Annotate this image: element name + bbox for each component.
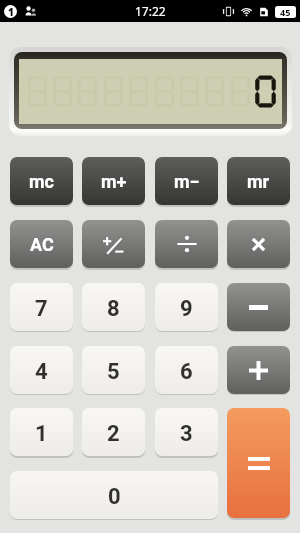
staticText: 17:22 <box>135 3 166 19</box>
button[interactable]: 0 <box>10 471 218 519</box>
button[interactable]: Divide <box>155 220 218 268</box>
button[interactable]: Plus <box>227 346 290 394</box>
staticText: AC <box>30 234 54 255</box>
staticText: 1 <box>35 421 48 447</box>
button[interactable]: 9 <box>155 283 218 331</box>
button[interactable]: 4 <box>10 346 73 394</box>
button[interactable]: 6 <box>155 346 218 394</box>
button[interactable]: 1 <box>10 408 73 456</box>
staticText: mc <box>29 171 54 192</box>
staticText: 6 <box>180 359 193 385</box>
staticText: 0 <box>108 484 121 510</box>
button[interactable]: 2 <box>82 408 145 456</box>
staticText: 3 <box>180 421 193 447</box>
staticText: 45 <box>280 6 291 18</box>
staticText: 1 <box>8 5 14 18</box>
button[interactable]: 3 <box>155 408 218 456</box>
button[interactable]: Equals <box>227 408 290 518</box>
staticText: 2 <box>107 421 120 447</box>
button[interactable]: Memory subtract <box>155 157 218 205</box>
button[interactable]: Memory add <box>82 157 145 205</box>
button[interactable]: Memory recall <box>227 157 290 205</box>
staticText: m+ <box>101 171 127 192</box>
button[interactable]: Multiply <box>227 220 290 268</box>
button[interactable]: 7 <box>10 283 73 331</box>
button[interactable]: 5 <box>82 346 145 394</box>
staticText: 7 <box>35 296 48 322</box>
button[interactable]: Memory clear <box>10 157 73 205</box>
staticText: 5 <box>107 359 120 385</box>
button[interactable]: Plus minus <box>82 220 145 268</box>
staticText: mr <box>247 171 270 192</box>
button[interactable]: All clear <box>10 220 73 268</box>
button[interactable]: 8 <box>82 283 145 331</box>
staticText: 4 <box>35 359 48 385</box>
staticText: 9 <box>180 296 193 322</box>
staticText: m− <box>174 171 200 192</box>
button[interactable]: Minus <box>227 283 290 331</box>
staticText: 8 <box>107 296 120 322</box>
